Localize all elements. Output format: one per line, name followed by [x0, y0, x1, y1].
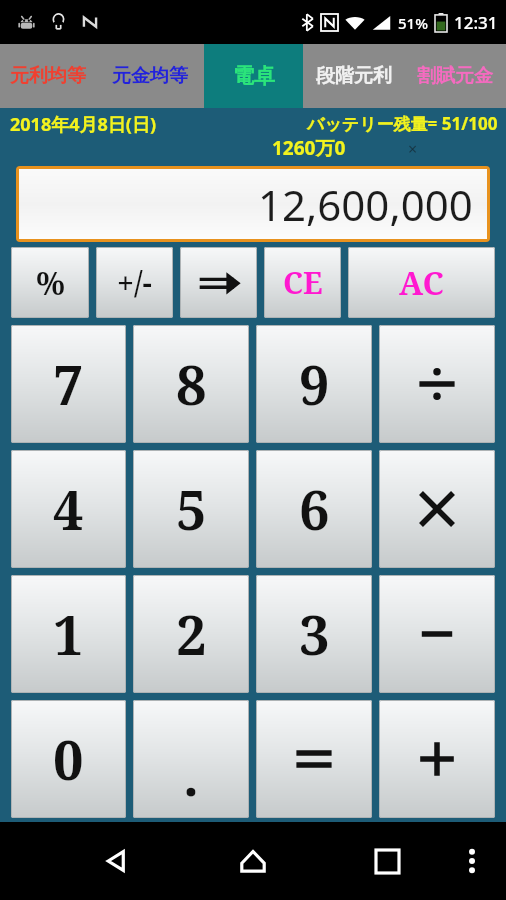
- staticText: 51%: [398, 13, 428, 33]
- staticText: CE: [283, 262, 323, 303]
- button[interactable]: More options: [452, 841, 492, 881]
- staticText: +/-: [117, 262, 152, 303]
- button[interactable]: 7: [11, 325, 126, 443]
- staticText: ×: [408, 138, 418, 160]
- button[interactable]: CE: [264, 247, 341, 318]
- staticText: 2018年4月8日(日): [10, 112, 156, 137]
- button[interactable]: Minus: [379, 575, 495, 693]
- staticText: 2: [176, 597, 207, 671]
- button[interactable]: 12,600,000: [19, 169, 487, 239]
- staticText: 12,600,000: [258, 176, 473, 233]
- staticText: AC: [399, 261, 444, 305]
- button[interactable]: 9: [256, 325, 372, 443]
- button[interactable]: 割賦元金: [404, 44, 506, 108]
- staticText: 段階元利: [316, 64, 392, 88]
- button[interactable]: .: [133, 700, 249, 818]
- staticText: 3: [299, 597, 330, 671]
- button[interactable]: Multiply: [379, 450, 495, 568]
- staticText: %: [36, 261, 65, 305]
- button[interactable]: 元金均等: [96, 44, 204, 108]
- staticText: 12:31: [454, 11, 498, 34]
- button[interactable]: 0: [11, 700, 126, 818]
- button[interactable]: 5: [133, 450, 249, 568]
- button[interactable]: %: [11, 247, 89, 318]
- staticText: 電卓: [233, 63, 275, 89]
- button[interactable]: 電卓: [204, 44, 303, 108]
- button[interactable]: Back: [92, 837, 140, 885]
- staticText: 0: [53, 722, 84, 796]
- button[interactable]: Equals: [256, 700, 372, 818]
- button[interactable]: 1: [11, 575, 126, 693]
- button[interactable]: 3: [256, 575, 372, 693]
- button[interactable]: Divide: [379, 325, 495, 443]
- staticText: バッテリー残量= 51/100: [307, 112, 498, 135]
- button[interactable]: AC: [348, 247, 495, 318]
- button[interactable]: 6: [256, 450, 372, 568]
- button[interactable]: 元利均等: [0, 44, 96, 108]
- staticText: .: [183, 738, 199, 812]
- staticText: 4: [53, 472, 84, 546]
- button[interactable]: Plus: [379, 700, 495, 818]
- staticText: 6: [299, 472, 330, 546]
- staticText: 元利均等: [10, 64, 86, 88]
- button[interactable]: Recent apps: [363, 837, 411, 885]
- staticText: 7: [53, 347, 84, 421]
- staticText: 9: [299, 347, 330, 421]
- button[interactable]: Backspace: [180, 247, 257, 318]
- staticText: 1260万0: [272, 135, 346, 161]
- button[interactable]: 段階元利: [303, 44, 404, 108]
- staticText: 5: [176, 472, 207, 546]
- button[interactable]: 8: [133, 325, 249, 443]
- staticText: 8: [176, 347, 207, 421]
- button[interactable]: +/-: [96, 247, 173, 318]
- staticText: 割賦元金: [417, 64, 493, 88]
- button[interactable]: Home: [229, 837, 277, 885]
- staticText: 元金均等: [112, 64, 188, 88]
- button[interactable]: 4: [11, 450, 126, 568]
- staticText: 1: [53, 597, 84, 671]
- button[interactable]: 2: [133, 575, 249, 693]
